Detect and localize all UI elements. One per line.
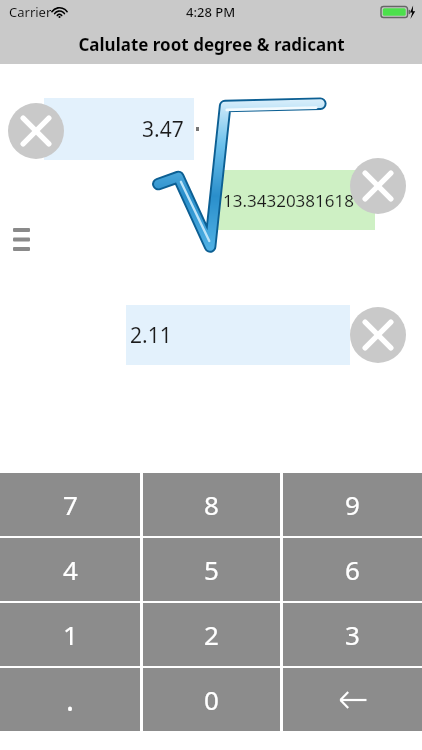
button[interactable]: 13.34320381618 (218, 170, 375, 230)
staticText: 0 (204, 682, 219, 717)
button[interactable]: 5 (143, 538, 280, 601)
staticText: 4:28 PM (186, 3, 236, 21)
staticText: 2 (204, 617, 219, 652)
staticText: 13.34320381618 (223, 189, 354, 212)
button[interactable]: Menu (6, 222, 36, 256)
staticText: 6 (345, 552, 360, 587)
staticText: . (66, 679, 75, 720)
staticText: Carrier (9, 3, 52, 21)
button[interactable]: 0 (143, 668, 280, 731)
button[interactable]: 2 (143, 603, 280, 666)
staticText: 8 (204, 487, 219, 522)
button[interactable]: 7 (0, 473, 140, 536)
staticText: 3.47 (142, 115, 184, 144)
button[interactable]: 3.47 (44, 98, 194, 160)
button[interactable]: 3 (283, 603, 422, 666)
button[interactable]: Clear root degree (8, 103, 64, 159)
staticText: 4 (63, 552, 78, 587)
button[interactable]: 9 (283, 473, 422, 536)
button[interactable]: 4 (0, 538, 140, 601)
button[interactable]: . (0, 668, 140, 731)
staticText: 9 (345, 487, 360, 522)
staticText: Calulate root degree & radicant (78, 33, 345, 56)
staticText: 5 (204, 552, 219, 587)
staticText: 1 (63, 617, 78, 652)
button[interactable]: 1 (0, 603, 140, 666)
staticText: 7 (63, 487, 78, 522)
button[interactable]: 2.11 (126, 305, 350, 365)
button[interactable]: Clear radicant (350, 307, 406, 363)
button[interactable]: Clear result (350, 158, 406, 214)
button[interactable]: Backspace (283, 668, 422, 731)
button[interactable]: 6 (283, 538, 422, 601)
staticText: 2.11 (130, 321, 172, 350)
button[interactable]: 8 (143, 473, 280, 536)
staticText: 3 (345, 617, 360, 652)
